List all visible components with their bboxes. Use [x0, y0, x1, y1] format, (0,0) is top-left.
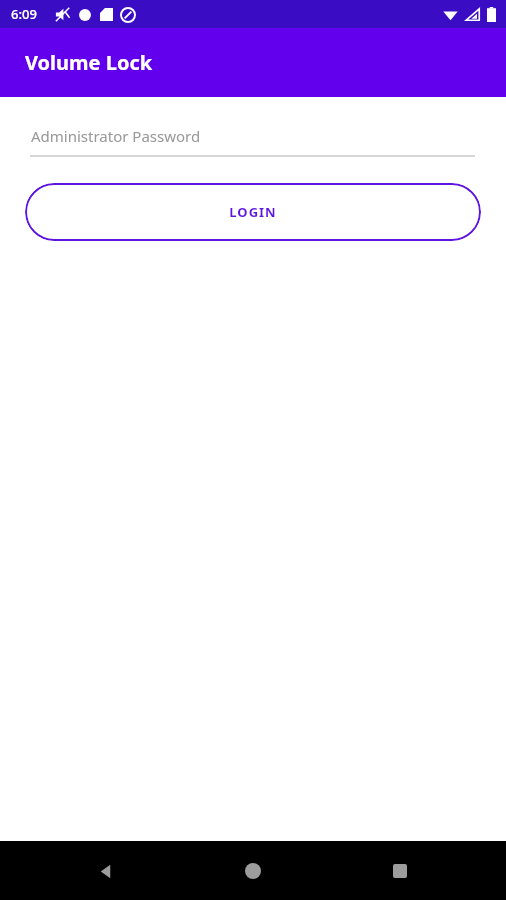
staticText: LOGIN — [229, 203, 277, 221]
button[interactable]: Recent apps — [382, 853, 418, 889]
button[interactable]: LOGIN — [25, 183, 481, 241]
staticText: Volume Lock — [25, 49, 153, 76]
staticText: Administrator Password — [31, 126, 201, 146]
button[interactable]: Administrator Password — [30, 126, 475, 157]
staticText: 6:09 — [11, 5, 37, 23]
button[interactable]: Back — [88, 853, 124, 889]
button[interactable]: Home — [235, 853, 271, 889]
